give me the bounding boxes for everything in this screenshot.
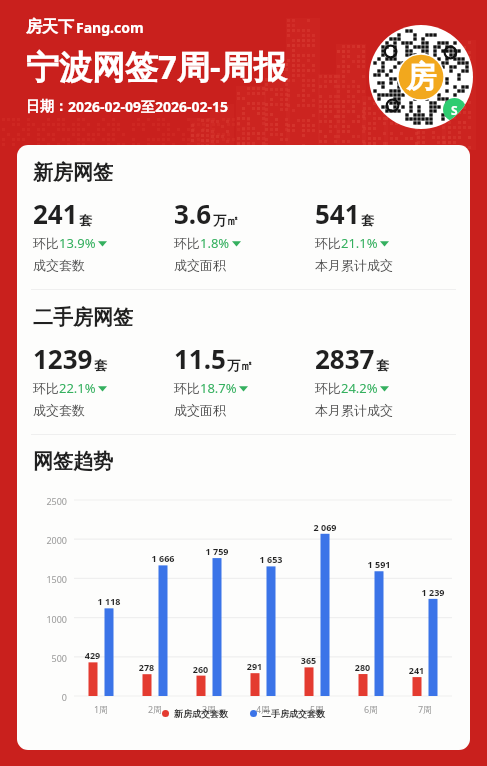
staticText: 5周 <box>302 703 332 715</box>
staticText: 环比 <box>33 235 59 251</box>
staticText: 二手房网签 <box>33 305 133 330</box>
staticText: 2 069 <box>310 521 340 533</box>
staticText: 22.1% <box>59 379 96 397</box>
staticText: 成交面积 <box>174 257 226 273</box>
staticText: 套 <box>361 212 374 228</box>
staticText: 成交套数 <box>33 402 85 418</box>
staticText: 541 <box>315 196 360 231</box>
staticText: 278 <box>134 661 159 673</box>
staticText: 260 <box>188 663 213 675</box>
staticText: 2周 <box>140 703 170 715</box>
staticText: 成交面积 <box>174 402 226 418</box>
staticText: 1.8% <box>200 234 230 252</box>
staticText: 套 <box>94 357 107 373</box>
staticText: 环比 <box>33 380 59 396</box>
staticText: 网签趋势 <box>33 449 113 474</box>
staticText: 成交套数 <box>33 257 85 273</box>
staticText: 1 591 <box>364 558 394 570</box>
staticText: 1 666 <box>148 552 178 564</box>
staticText: 宁波网签7周-周报 <box>26 44 287 89</box>
staticText: 7周 <box>410 703 440 715</box>
staticText: 3.6 <box>174 196 212 231</box>
staticText: 套 <box>79 212 92 228</box>
staticText: 本月累计成交 <box>315 257 393 273</box>
staticText: 18.7% <box>200 379 237 397</box>
staticText: 1500 <box>33 573 67 585</box>
button[interactable]: 新房成交套数 <box>162 708 325 719</box>
staticText: 环比 <box>174 380 200 396</box>
staticText: Fang.com <box>76 18 144 37</box>
staticText: 0 <box>33 691 67 703</box>
staticText: 1 118 <box>94 595 124 607</box>
staticText: 1 653 <box>256 553 286 565</box>
staticText: 本月累计成交 <box>315 402 393 418</box>
staticText: 291 <box>242 660 267 672</box>
staticText: 2500 <box>33 495 67 507</box>
staticText: 429 <box>80 649 105 661</box>
staticText: 1239 <box>33 341 93 376</box>
staticText: 4周 <box>248 703 278 715</box>
button[interactable]: 扫码关注小程序 <box>369 25 473 129</box>
staticText: 房 <box>406 58 436 96</box>
staticText: 24.2% <box>341 379 378 397</box>
staticText: 13.9% <box>59 234 96 252</box>
staticText: 日期： <box>26 98 68 116</box>
button[interactable]: 241 <box>33 196 470 273</box>
staticText: 新房成交套数 <box>174 708 228 719</box>
staticText: 500 <box>33 652 67 664</box>
staticText: 6周 <box>356 703 386 715</box>
button[interactable]: 1239 <box>33 341 470 418</box>
staticText: 2837 <box>315 341 375 376</box>
staticText: 21.1% <box>341 234 378 252</box>
staticText: 11.5 <box>174 341 226 376</box>
staticText: 二手房成交套数 <box>262 708 325 719</box>
staticText: 环比 <box>315 235 341 251</box>
staticText: 万㎡ <box>227 357 253 373</box>
staticText: 套 <box>376 357 389 373</box>
staticText: 3周 <box>194 703 224 715</box>
staticText: 241 <box>404 664 429 676</box>
staticText: 1 239 <box>418 586 448 598</box>
staticText: 1 759 <box>202 545 232 557</box>
staticText: 2000 <box>33 534 67 546</box>
staticText: 万㎡ <box>213 212 239 228</box>
staticText: 1周 <box>86 703 116 715</box>
staticText: 新房网签 <box>33 160 113 185</box>
staticText: 365 <box>296 654 321 666</box>
staticText: S <box>451 102 458 118</box>
staticText: 环比 <box>315 380 341 396</box>
staticText: 2026-02-09至2026-02-15 <box>68 97 229 116</box>
staticText: 房天下 <box>26 17 74 37</box>
staticText: 环比 <box>174 235 200 251</box>
staticText: 241 <box>33 196 78 231</box>
staticText: 280 <box>350 661 375 673</box>
staticText: 1000 <box>33 613 67 625</box>
